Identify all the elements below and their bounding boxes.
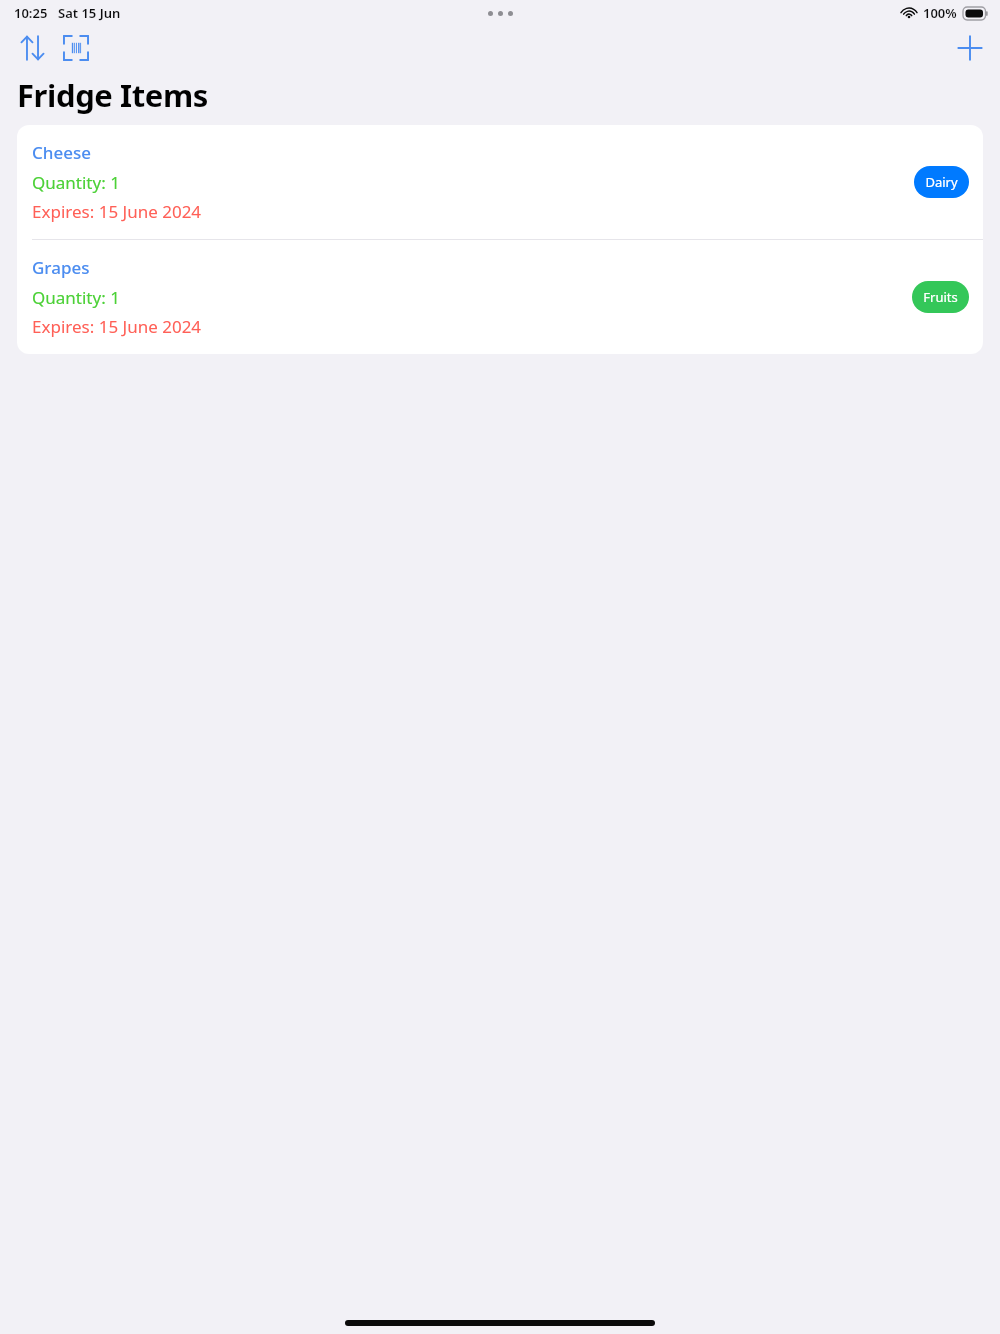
staticText: Quantity: 1	[32, 171, 120, 194]
staticText: Fridge Items	[17, 74, 208, 116]
button[interactable]: Fruits	[912, 281, 969, 313]
button[interactable]: Sort	[10, 26, 54, 70]
staticText: Dairy	[925, 173, 958, 191]
button[interactable]: Add item	[948, 26, 992, 70]
staticText: Expires: 15 June 2024	[32, 200, 202, 223]
button[interactable]: Grapes	[17, 240, 983, 354]
button[interactable]: Dairy	[914, 166, 969, 198]
button[interactable]: Cheese	[17, 125, 983, 239]
staticText: Expires: 15 June 2024	[32, 315, 202, 338]
button[interactable]: Scan barcode	[54, 26, 98, 70]
staticText: 100%	[923, 4, 957, 22]
staticText: Cheese	[32, 141, 91, 164]
staticText: Fruits	[923, 288, 958, 306]
staticText: Sat 15 Jun	[58, 4, 121, 22]
staticText: Quantity: 1	[32, 286, 120, 309]
staticText: Grapes	[32, 256, 90, 279]
staticText: 10:25	[14, 4, 48, 22]
